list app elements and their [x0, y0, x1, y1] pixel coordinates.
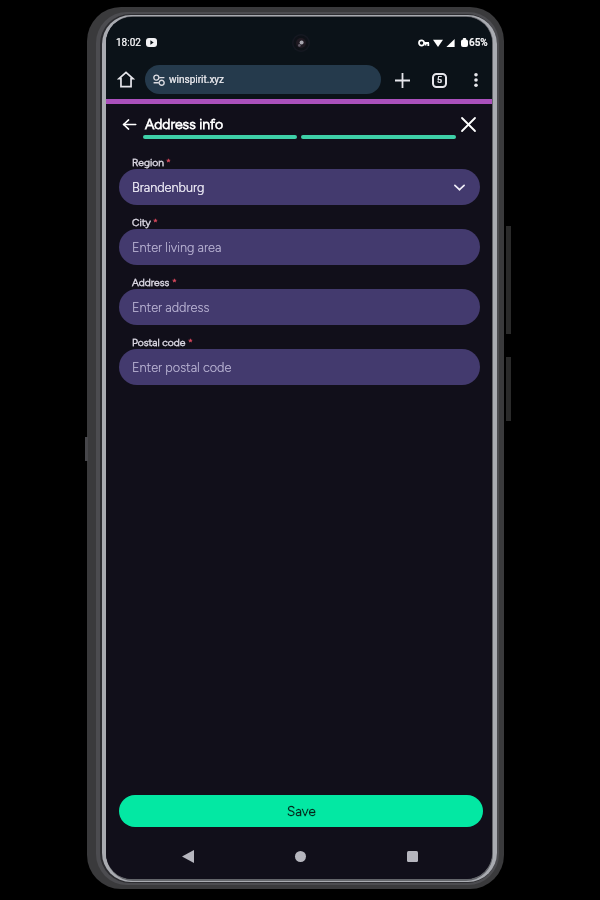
staticText: * [172, 276, 177, 288]
staticText: Region [132, 156, 164, 168]
staticText: * [188, 336, 193, 348]
staticText: Address [132, 276, 170, 288]
button[interactable]: Home [111, 65, 140, 94]
staticText: Brandenburg [132, 180, 205, 195]
button[interactable]: Enter address [119, 289, 480, 325]
button[interactable]: Enter postal code [119, 349, 480, 385]
staticText: Save [287, 803, 316, 819]
button[interactable]: Home [278, 834, 322, 879]
staticText: 65% [469, 37, 488, 48]
button[interactable]: New tab [386, 64, 418, 96]
staticText: Postal code [132, 336, 186, 348]
button[interactable]: Close [457, 113, 479, 135]
staticText: Enter postal code [132, 360, 232, 375]
staticText: Address info [145, 116, 224, 133]
button[interactable]: Brandenburg [119, 169, 480, 205]
staticText: * [166, 156, 171, 168]
button[interactable]: winspirit.xyz [145, 65, 381, 94]
button[interactable]: Recents [390, 834, 434, 879]
button[interactable]: Back [118, 113, 140, 135]
button[interactable]: Tabs [423, 64, 455, 96]
staticText: Enter living area [132, 240, 222, 255]
button[interactable]: Save [119, 795, 483, 827]
staticText: Enter address [132, 300, 210, 315]
staticText: 18:02 [116, 37, 141, 48]
button[interactable]: Back [166, 834, 210, 879]
staticText: 5 [437, 75, 443, 86]
staticText: winspirit.xyz [169, 74, 225, 86]
staticText: * [153, 216, 158, 228]
staticText: City [132, 216, 151, 228]
button[interactable]: More options [460, 64, 492, 96]
button[interactable]: Enter living area [119, 229, 480, 265]
